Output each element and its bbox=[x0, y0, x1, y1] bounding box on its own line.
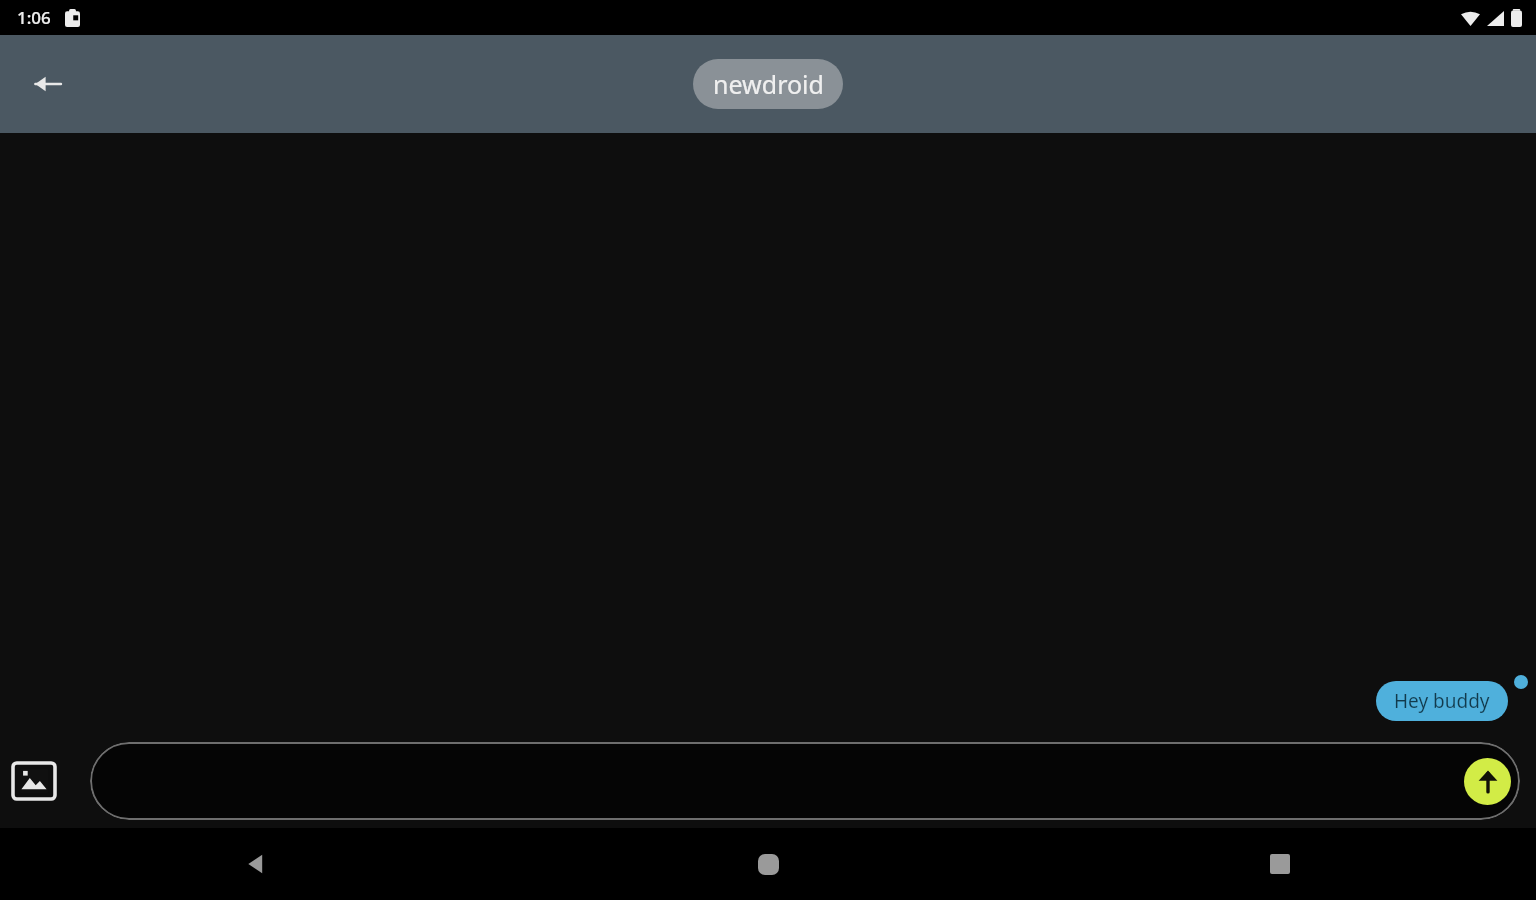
staticText: Hey buddy bbox=[1394, 688, 1490, 714]
button[interactable]: Attach image bbox=[8, 755, 60, 807]
button[interactable]: Back bbox=[0, 828, 512, 900]
button[interactable]: Hey buddy bbox=[1376, 681, 1508, 721]
button[interactable]: Send bbox=[90, 742, 1520, 820]
staticText: 1:06 bbox=[17, 6, 51, 29]
button[interactable]: Recent apps bbox=[1024, 828, 1536, 900]
button[interactable]: newdroid bbox=[693, 59, 843, 109]
button[interactable]: Home bbox=[512, 828, 1024, 900]
button[interactable]: Send bbox=[1464, 758, 1511, 805]
button[interactable]: Back bbox=[20, 56, 76, 112]
staticText: newdroid bbox=[713, 67, 824, 101]
